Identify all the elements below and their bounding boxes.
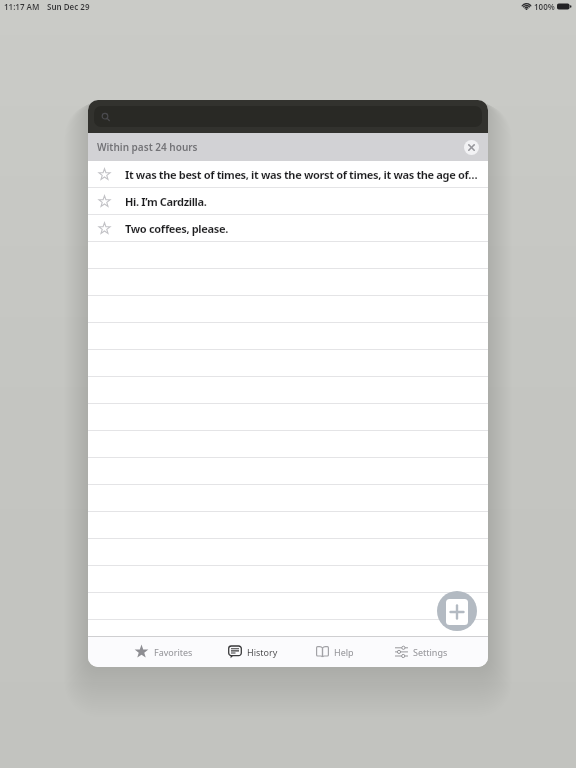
button[interactable] xyxy=(88,350,488,377)
button[interactable] xyxy=(464,140,479,155)
button[interactable] xyxy=(88,242,488,269)
button[interactable]: Favorites xyxy=(134,644,193,659)
button[interactable] xyxy=(88,323,488,350)
button[interactable]: Settings xyxy=(395,646,448,658)
staticText: History xyxy=(247,646,278,658)
staticText: Hi. I’m Cardzilla. xyxy=(125,194,207,209)
button[interactable] xyxy=(88,458,488,485)
button[interactable] xyxy=(88,566,488,593)
button[interactable] xyxy=(88,377,488,404)
button[interactable] xyxy=(88,539,488,566)
button[interactable] xyxy=(437,591,477,631)
button[interactable] xyxy=(88,593,488,620)
button[interactable] xyxy=(88,512,488,539)
staticText: 11:17 AM xyxy=(4,1,40,12)
button[interactable] xyxy=(88,485,488,512)
button[interactable]: Help xyxy=(316,646,354,658)
staticText: 100% xyxy=(534,1,555,12)
staticText: Sun Dec 29 xyxy=(47,1,90,12)
staticText: Settings xyxy=(413,646,448,658)
button[interactable] xyxy=(88,296,488,323)
button[interactable] xyxy=(88,404,488,431)
button[interactable]: Two coffees, please. xyxy=(88,215,488,242)
staticText: Favorites xyxy=(154,646,193,658)
button[interactable]: Hi. I’m Cardzilla. xyxy=(88,188,488,215)
staticText: Two coffees, please. xyxy=(125,221,228,236)
staticText: Within past 24 hours xyxy=(97,140,198,154)
staticText: Help xyxy=(334,646,354,658)
staticText: It was the best of times, it was the wor… xyxy=(125,167,480,182)
button[interactable]: It was the best of times, it was the wor… xyxy=(88,161,488,188)
button[interactable]: History xyxy=(228,645,278,659)
button[interactable] xyxy=(88,431,488,458)
button[interactable] xyxy=(88,269,488,296)
